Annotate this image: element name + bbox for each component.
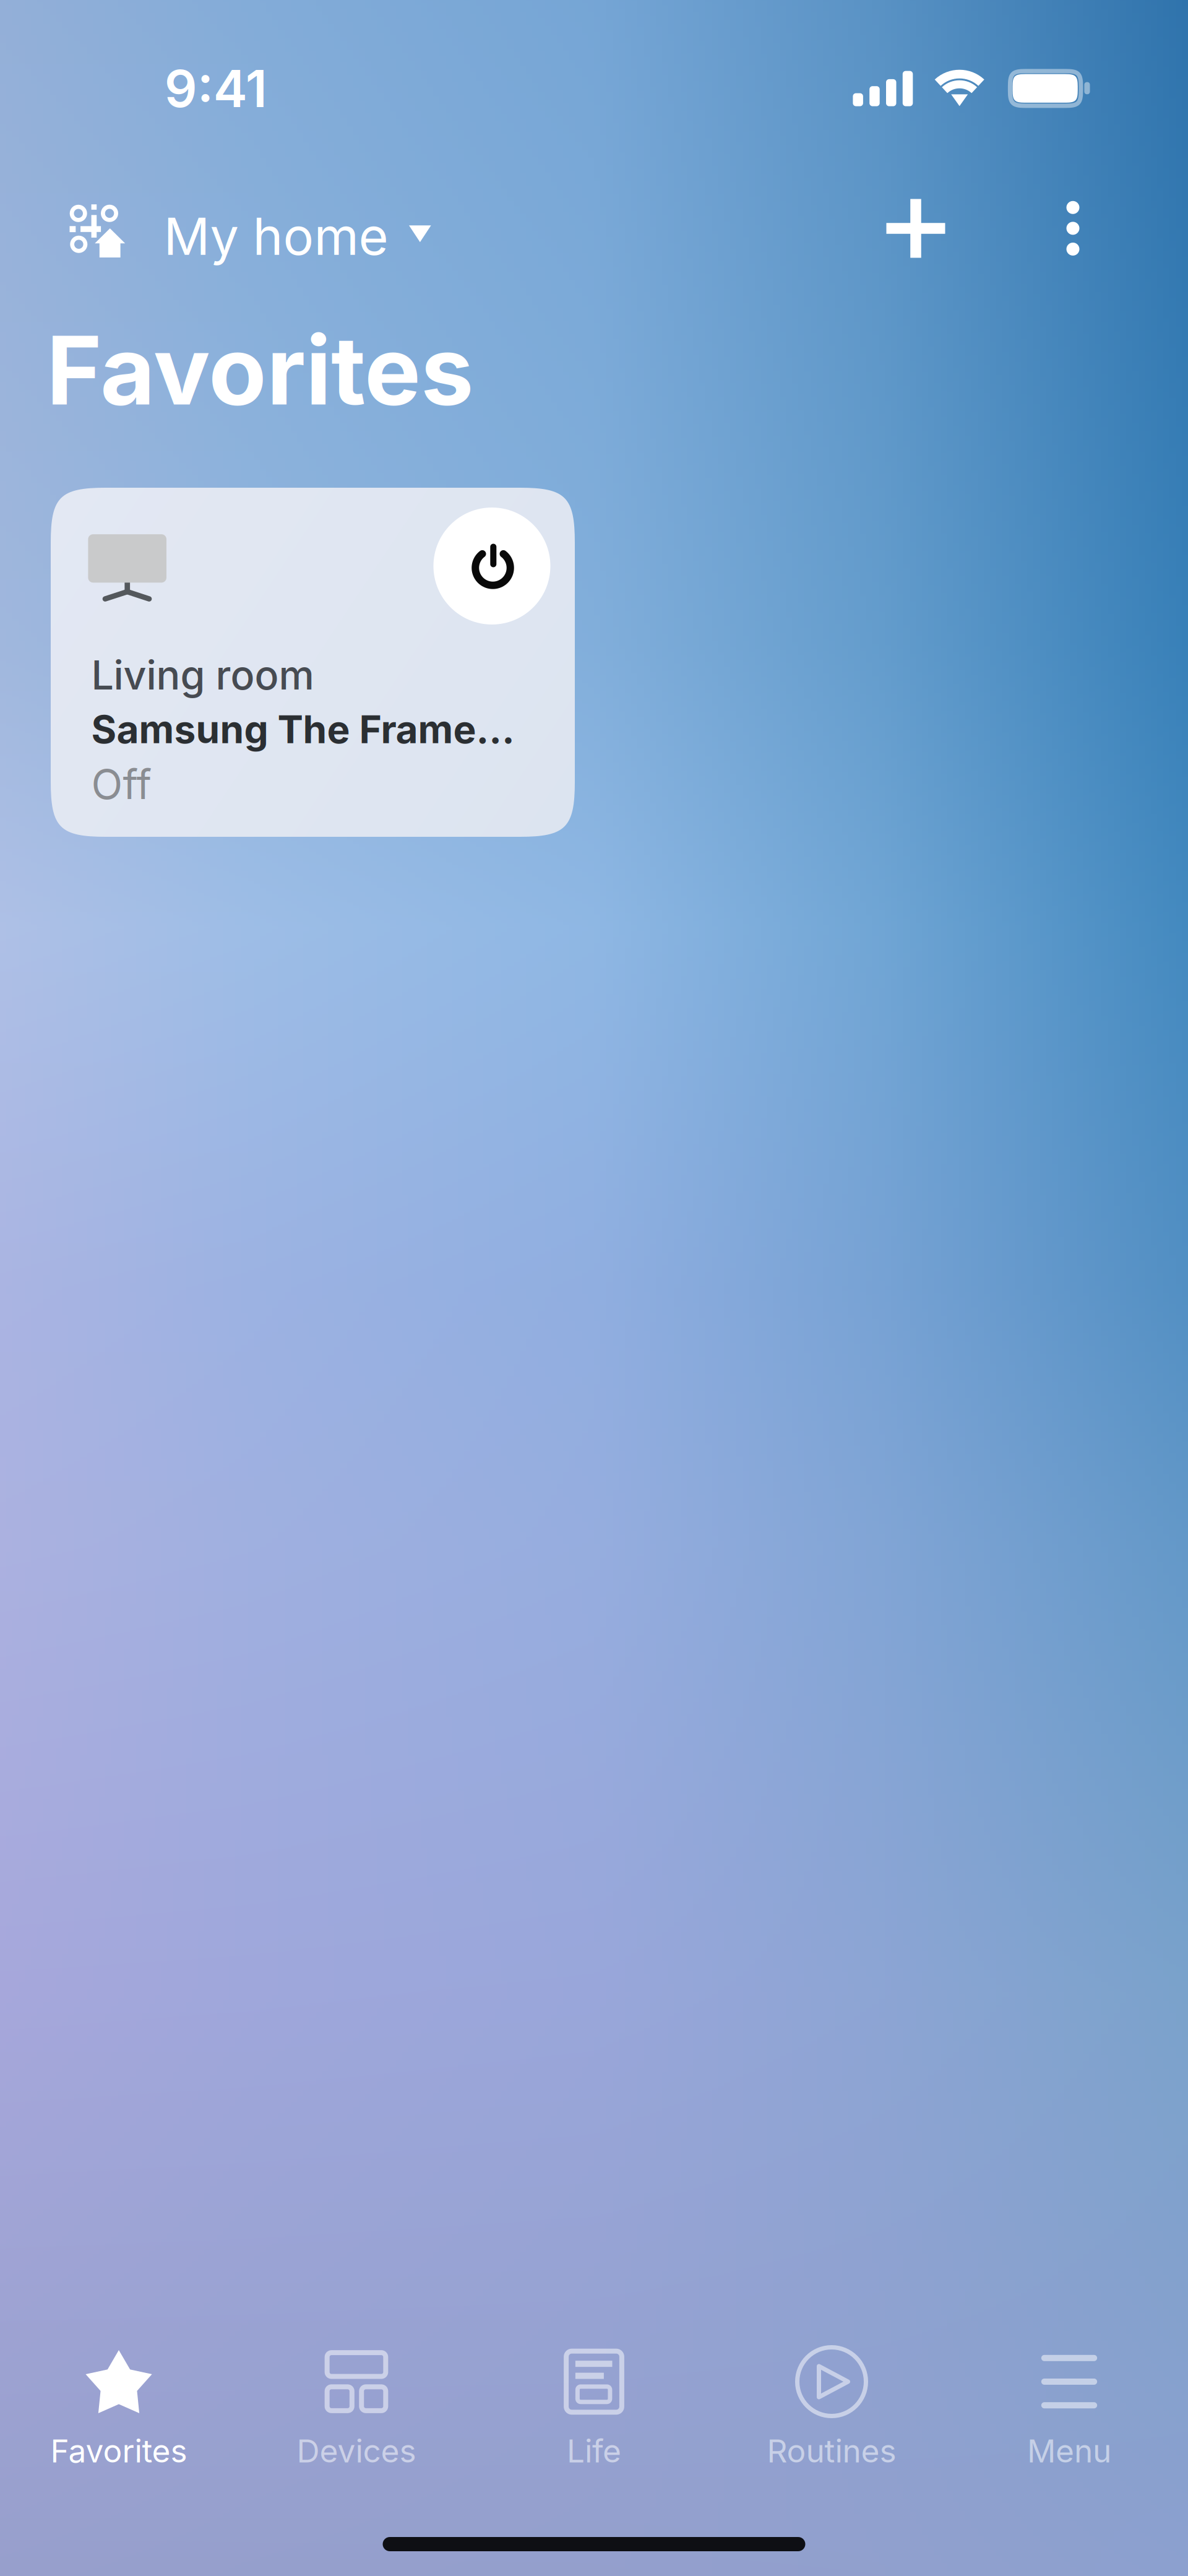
button[interactable]: Devices [238, 2345, 475, 2469]
button[interactable]: Menu [950, 2345, 1188, 2469]
button[interactable]: Favorites [0, 2345, 238, 2469]
button[interactable]: My home [164, 204, 431, 269]
button[interactable]: SmartThings [70, 204, 125, 258]
staticText: Favorites [50, 2432, 187, 2470]
staticText: Samsung The Frame… [91, 706, 514, 752]
button[interactable]: Life [475, 2345, 713, 2469]
staticText: Living room [91, 651, 314, 699]
staticText: Favorites [46, 313, 474, 427]
button[interactable]: Add device [886, 199, 945, 258]
staticText: 9:41 [164, 57, 267, 119]
button[interactable]: Living room [51, 488, 575, 837]
staticText: Devices [297, 2432, 416, 2470]
staticText: Off [91, 759, 152, 809]
staticText: Routines [767, 2432, 896, 2470]
staticText: Menu [1027, 2432, 1111, 2470]
staticText: My home [164, 205, 388, 267]
button[interactable]: Routines [713, 2345, 950, 2469]
button[interactable]: More options [1066, 201, 1079, 256]
button[interactable]: Power [433, 508, 550, 625]
staticText: Life [567, 2432, 621, 2470]
